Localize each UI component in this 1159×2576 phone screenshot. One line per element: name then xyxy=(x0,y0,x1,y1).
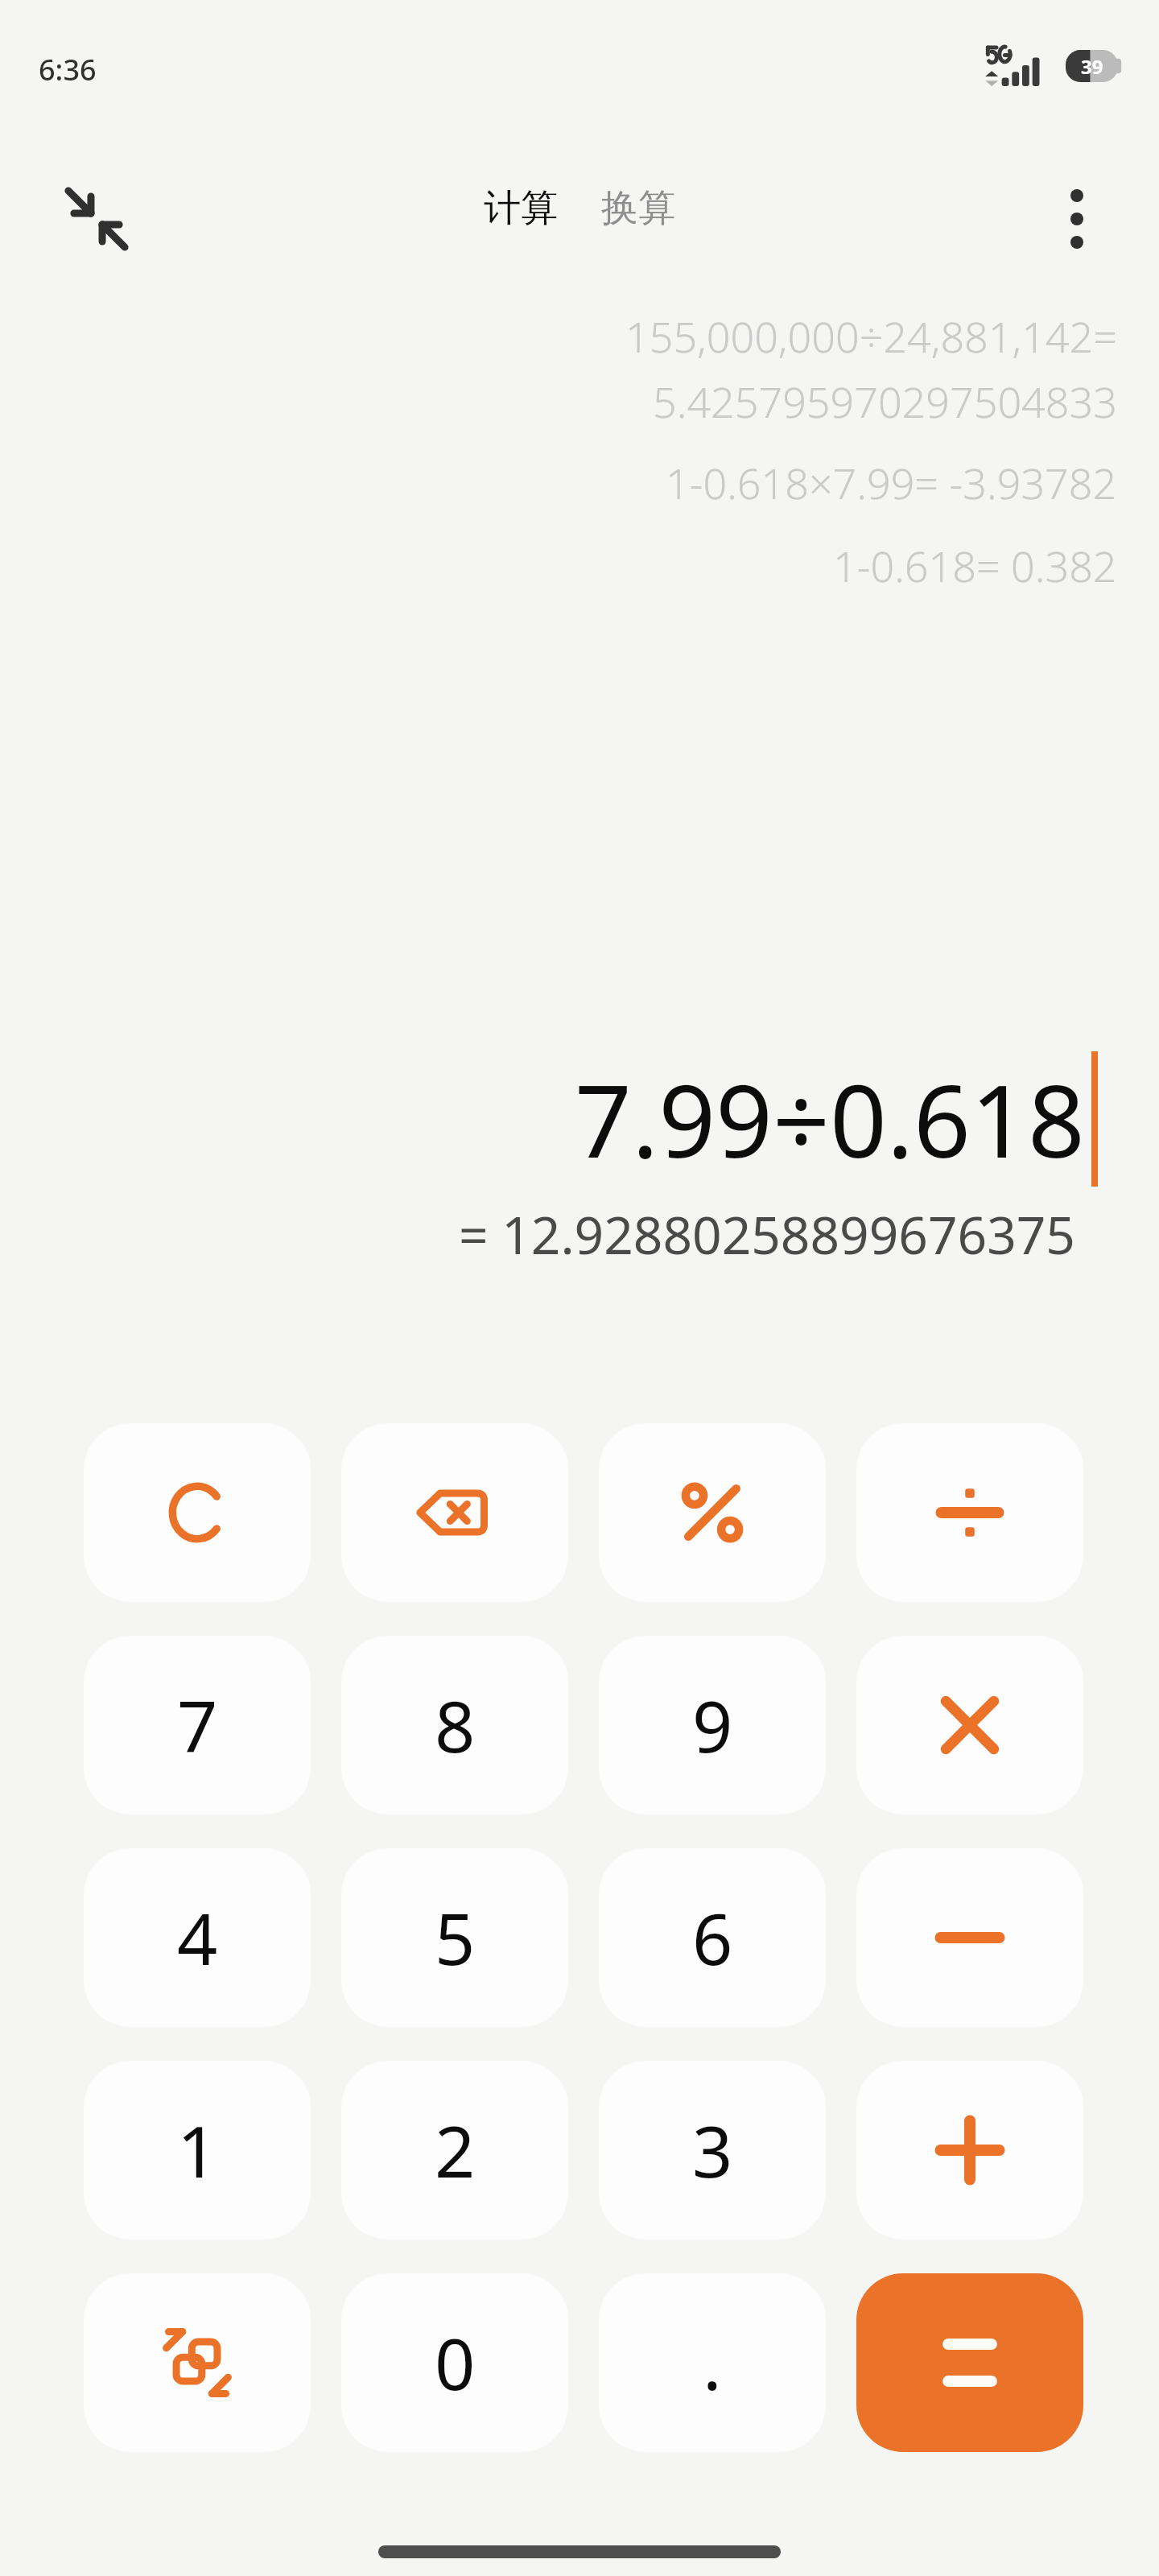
button[interactable]: . xyxy=(599,2273,826,2452)
staticText: 8 xyxy=(435,1677,476,1773)
button[interactable]: Scientific mode xyxy=(84,2273,311,2452)
staticText: 0 xyxy=(435,2314,476,2411)
staticText: 7 xyxy=(177,1677,218,1773)
staticText: 6:36 xyxy=(39,50,97,89)
staticText: 1-0.618×7.99= -3.93782 xyxy=(666,454,1117,511)
staticText: 计算 xyxy=(484,185,558,232)
button[interactable]: Backspace xyxy=(341,1423,568,1602)
button[interactable]: 4 xyxy=(84,1848,311,2027)
button[interactable]: Percent xyxy=(599,1423,826,1602)
button[interactable]: Minus xyxy=(856,1848,1083,2027)
button[interactable]: 计算 xyxy=(471,175,571,242)
button[interactable]: 3 xyxy=(599,2061,826,2240)
button[interactable]: Divide xyxy=(856,1423,1083,1602)
staticText: . xyxy=(703,2314,722,2411)
button[interactable]: 8 xyxy=(341,1636,568,1814)
button[interactable]: Plus xyxy=(856,2061,1083,2240)
button[interactable]: 6 xyxy=(599,1848,826,2027)
staticText: = 12.92880258899676375 xyxy=(459,1199,1075,1269)
button[interactable]: 0 xyxy=(341,2273,568,2452)
button[interactable]: Multiply xyxy=(856,1636,1083,1814)
button[interactable]: More options xyxy=(1024,166,1130,272)
staticText: 4 xyxy=(177,1889,218,1986)
staticText: 5.425795970297504833 xyxy=(653,373,1117,430)
staticText: 3 xyxy=(692,2102,733,2198)
staticText: 1-0.618= 0.382 xyxy=(833,537,1117,594)
staticText: 39 xyxy=(1081,53,1103,80)
staticText: 2 xyxy=(435,2102,476,2198)
staticText: 7.99÷0.618 xyxy=(575,1051,1085,1187)
button[interactable]: Equals xyxy=(856,2273,1083,2452)
staticText: 6 xyxy=(692,1889,733,1986)
button[interactable]: 2 xyxy=(341,2061,568,2240)
staticText: 155,000,000÷24,881,142= xyxy=(625,308,1117,365)
button[interactable]: Clear xyxy=(84,1423,311,1602)
button[interactable]: 换算 xyxy=(588,175,688,242)
staticText: 5 xyxy=(435,1889,476,1986)
staticText: 9 xyxy=(692,1677,733,1773)
button[interactable]: 9 xyxy=(599,1636,826,1814)
button[interactable]: 5 xyxy=(341,1848,568,2027)
button[interactable]: 7 xyxy=(84,1636,311,1814)
button[interactable]: Collapse xyxy=(43,166,150,272)
staticText: 1 xyxy=(177,2102,218,2198)
button[interactable]: 1 xyxy=(84,2061,311,2240)
staticText: 换算 xyxy=(601,185,675,232)
